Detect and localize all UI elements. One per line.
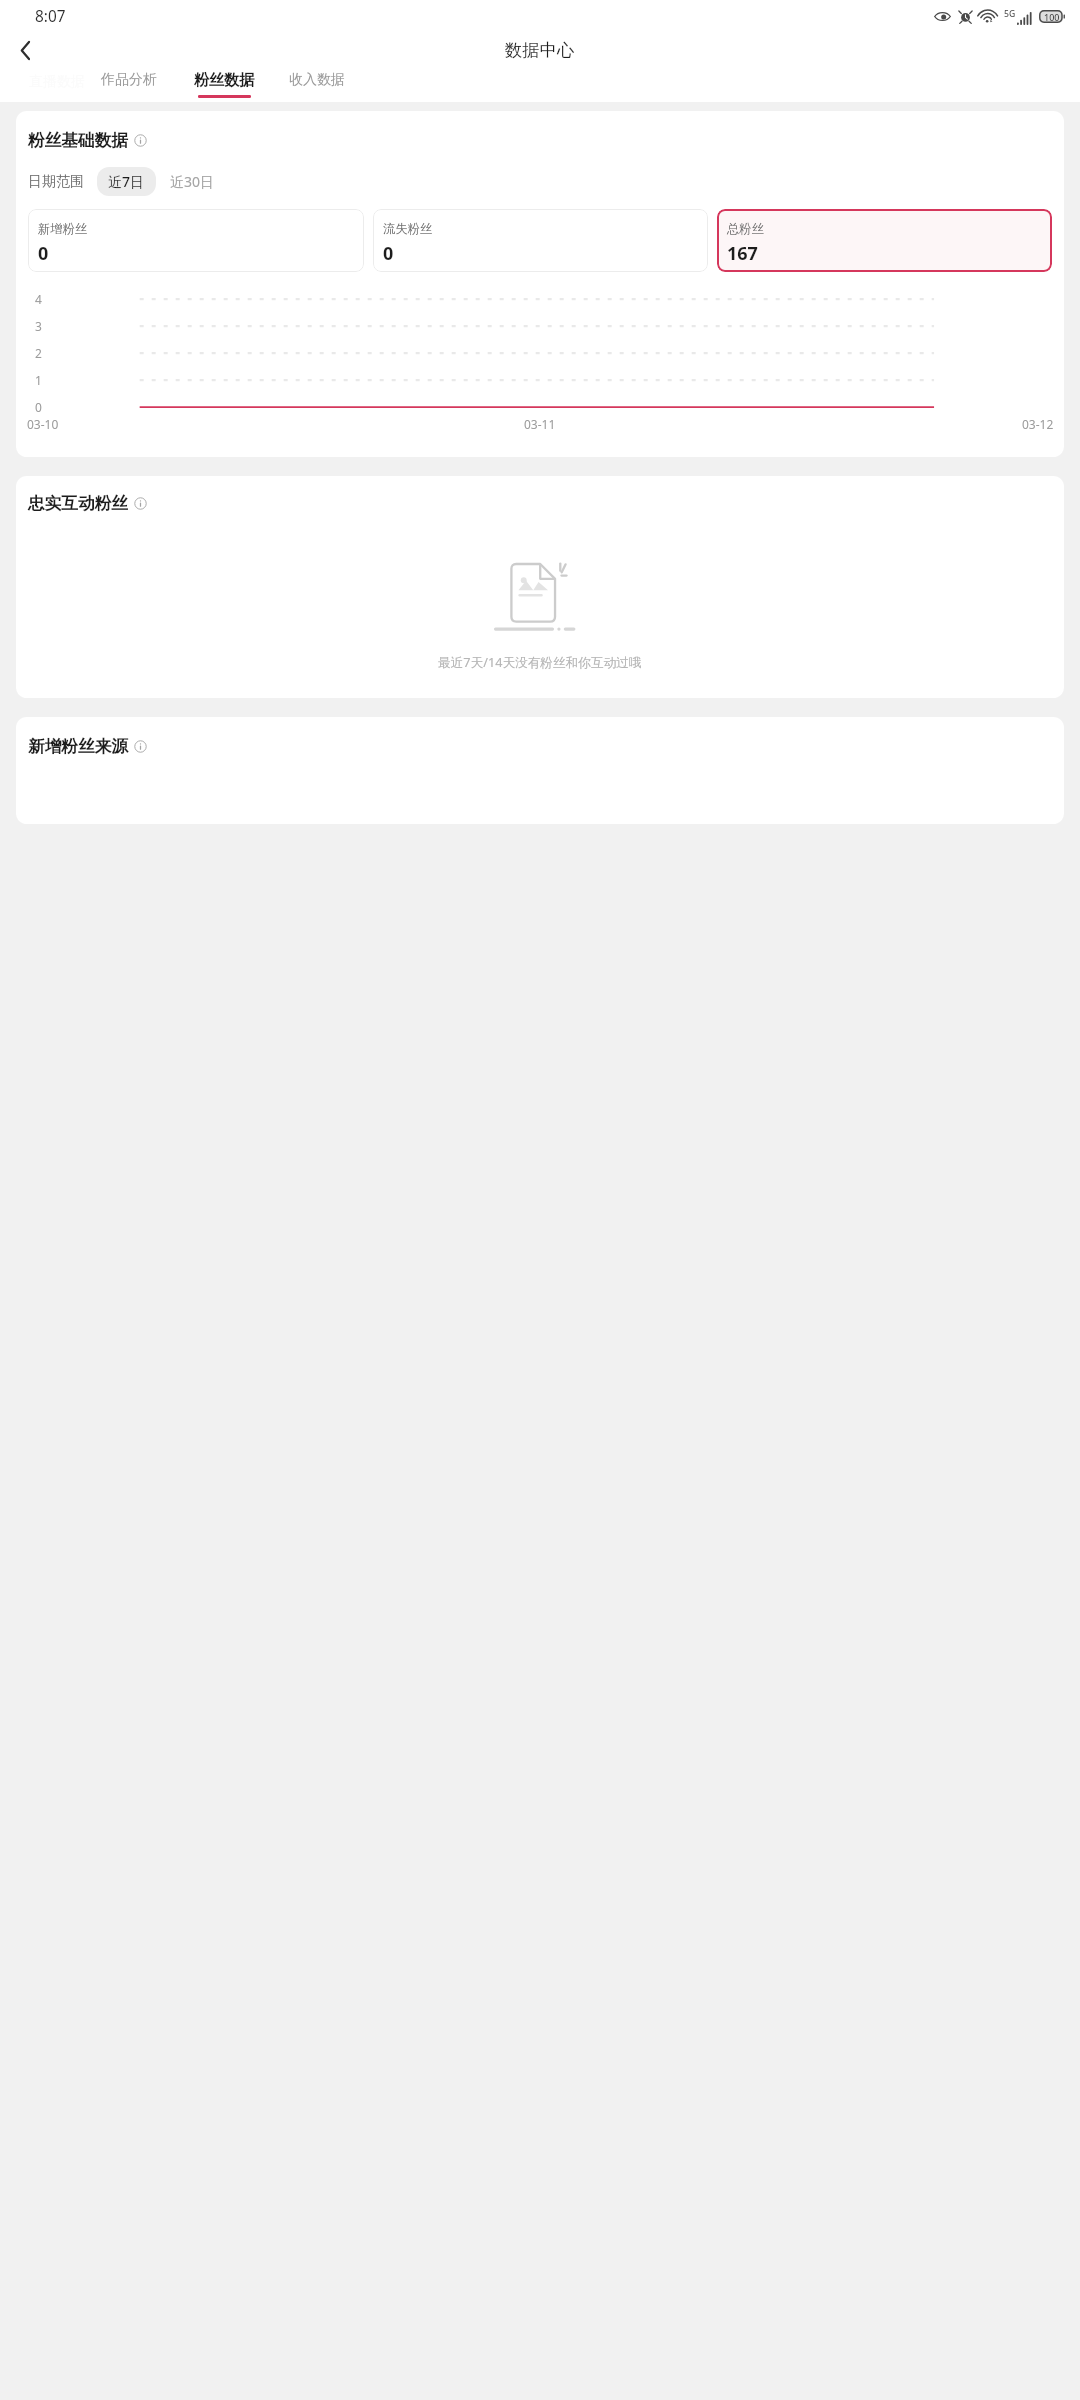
button[interactable]: 总粉丝 (717, 209, 1052, 272)
staticText: 03-12 (1022, 416, 1054, 432)
staticText: 0 (383, 241, 394, 266)
button[interactable]: 粉丝基础数据 说明 (133, 133, 148, 148)
button[interactable]: 新增粉丝 (28, 209, 364, 272)
staticText: 粉丝基础数据 (28, 130, 128, 151)
staticText: 03-11 (524, 416, 556, 432)
staticText: 最近7天/14天没有粉丝和你互动过哦 (438, 653, 642, 670)
staticText: 0 (38, 241, 49, 266)
button[interactable]: Back (9, 34, 41, 66)
button[interactable]: 新增粉丝来源 说明 (133, 739, 148, 754)
button[interactable]: 近7日 (97, 167, 156, 196)
staticText: 5G (1004, 8, 1016, 20)
staticText: 忠实互动粉丝 (28, 493, 128, 514)
staticText: 日期范围 (28, 173, 84, 191)
staticText: 近30日 (170, 172, 215, 191)
staticText: 新增粉丝来源 (28, 736, 128, 757)
staticText: 流失粉丝 (383, 221, 433, 237)
staticText: 新增粉丝 (38, 221, 88, 237)
staticText: 3 (35, 318, 42, 334)
staticText: 1 (35, 372, 42, 388)
staticText: 收入数据 (289, 71, 345, 89)
button[interactable]: 流失粉丝 (373, 209, 708, 272)
button[interactable]: 作品分析 (99, 70, 159, 98)
staticText: 0 (35, 399, 42, 415)
staticText: 8:07 (35, 6, 66, 27)
button[interactable]: 忠实互动粉丝 说明 (133, 496, 148, 511)
button[interactable]: 近30日 (163, 167, 222, 196)
staticText: 2 (35, 345, 42, 361)
staticText: 总粉丝 (727, 221, 764, 237)
staticText: 167 (727, 241, 758, 266)
staticText: 100 (1044, 11, 1060, 23)
staticText: 4 (35, 291, 42, 307)
staticText: 数据中心 (505, 39, 575, 61)
staticText: 粉丝数据 (194, 71, 254, 90)
staticText: 03-10 (27, 416, 59, 432)
button[interactable]: 收入数据 (287, 70, 347, 98)
button[interactable]: 粉丝数据 (192, 70, 256, 99)
staticText: 近7日 (108, 172, 145, 191)
staticText: 作品分析 (101, 71, 157, 89)
